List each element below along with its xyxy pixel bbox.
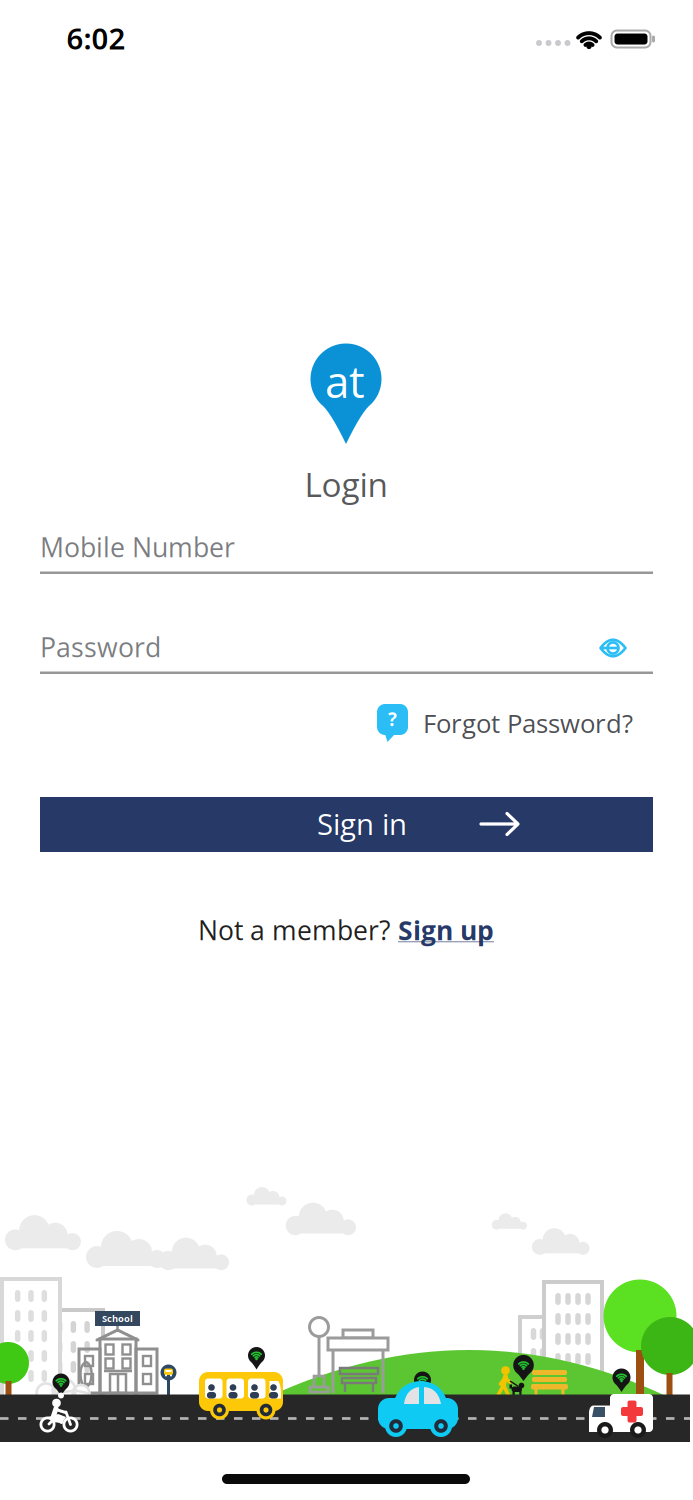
- button[interactable]: Mobile Number: [40, 520, 653, 574]
- staticText: ?: [388, 706, 397, 732]
- button[interactable]: [599, 637, 627, 659]
- staticText: Not a member?: [198, 912, 390, 948]
- staticText: Sign up: [398, 912, 494, 948]
- staticText: Mobile Number: [40, 529, 235, 565]
- staticText: School: [102, 1312, 133, 1325]
- button[interactable]: Not a member?: [198, 912, 494, 948]
- staticText: Password: [40, 629, 161, 665]
- staticText: Sign in: [317, 803, 407, 843]
- button[interactable]: Sign in: [40, 797, 653, 852]
- button[interactable]: ?: [377, 704, 633, 742]
- staticText: Login: [304, 461, 387, 507]
- staticText: at: [325, 351, 365, 411]
- staticText: Forgot Password?: [423, 705, 633, 740]
- button[interactable]: Password: [40, 620, 653, 674]
- staticText: 6:02: [66, 18, 125, 57]
